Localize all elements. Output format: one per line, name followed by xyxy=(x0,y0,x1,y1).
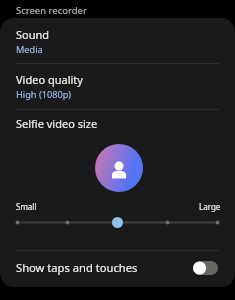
staticText: Small xyxy=(16,201,37,212)
staticText: Video quality xyxy=(16,72,83,87)
staticText: High (1080p) xyxy=(16,88,72,101)
staticText: Media xyxy=(16,43,43,56)
button[interactable]: Show taps and touches xyxy=(0,251,235,283)
staticText: Selfie video size xyxy=(16,116,98,131)
button[interactable]: Selfie size slider xyxy=(0,210,235,234)
button[interactable]: Show taps and touches toggle xyxy=(193,260,218,276)
button[interactable]: Sound xyxy=(0,18,235,63)
staticText: Sound xyxy=(16,27,50,42)
button[interactable]: Selfie video size preview xyxy=(95,144,143,192)
staticText: Show taps and touches xyxy=(16,260,138,275)
staticText: Large xyxy=(199,201,221,212)
button[interactable]: Video quality xyxy=(0,64,235,109)
staticText: Screen recorder xyxy=(16,4,87,17)
